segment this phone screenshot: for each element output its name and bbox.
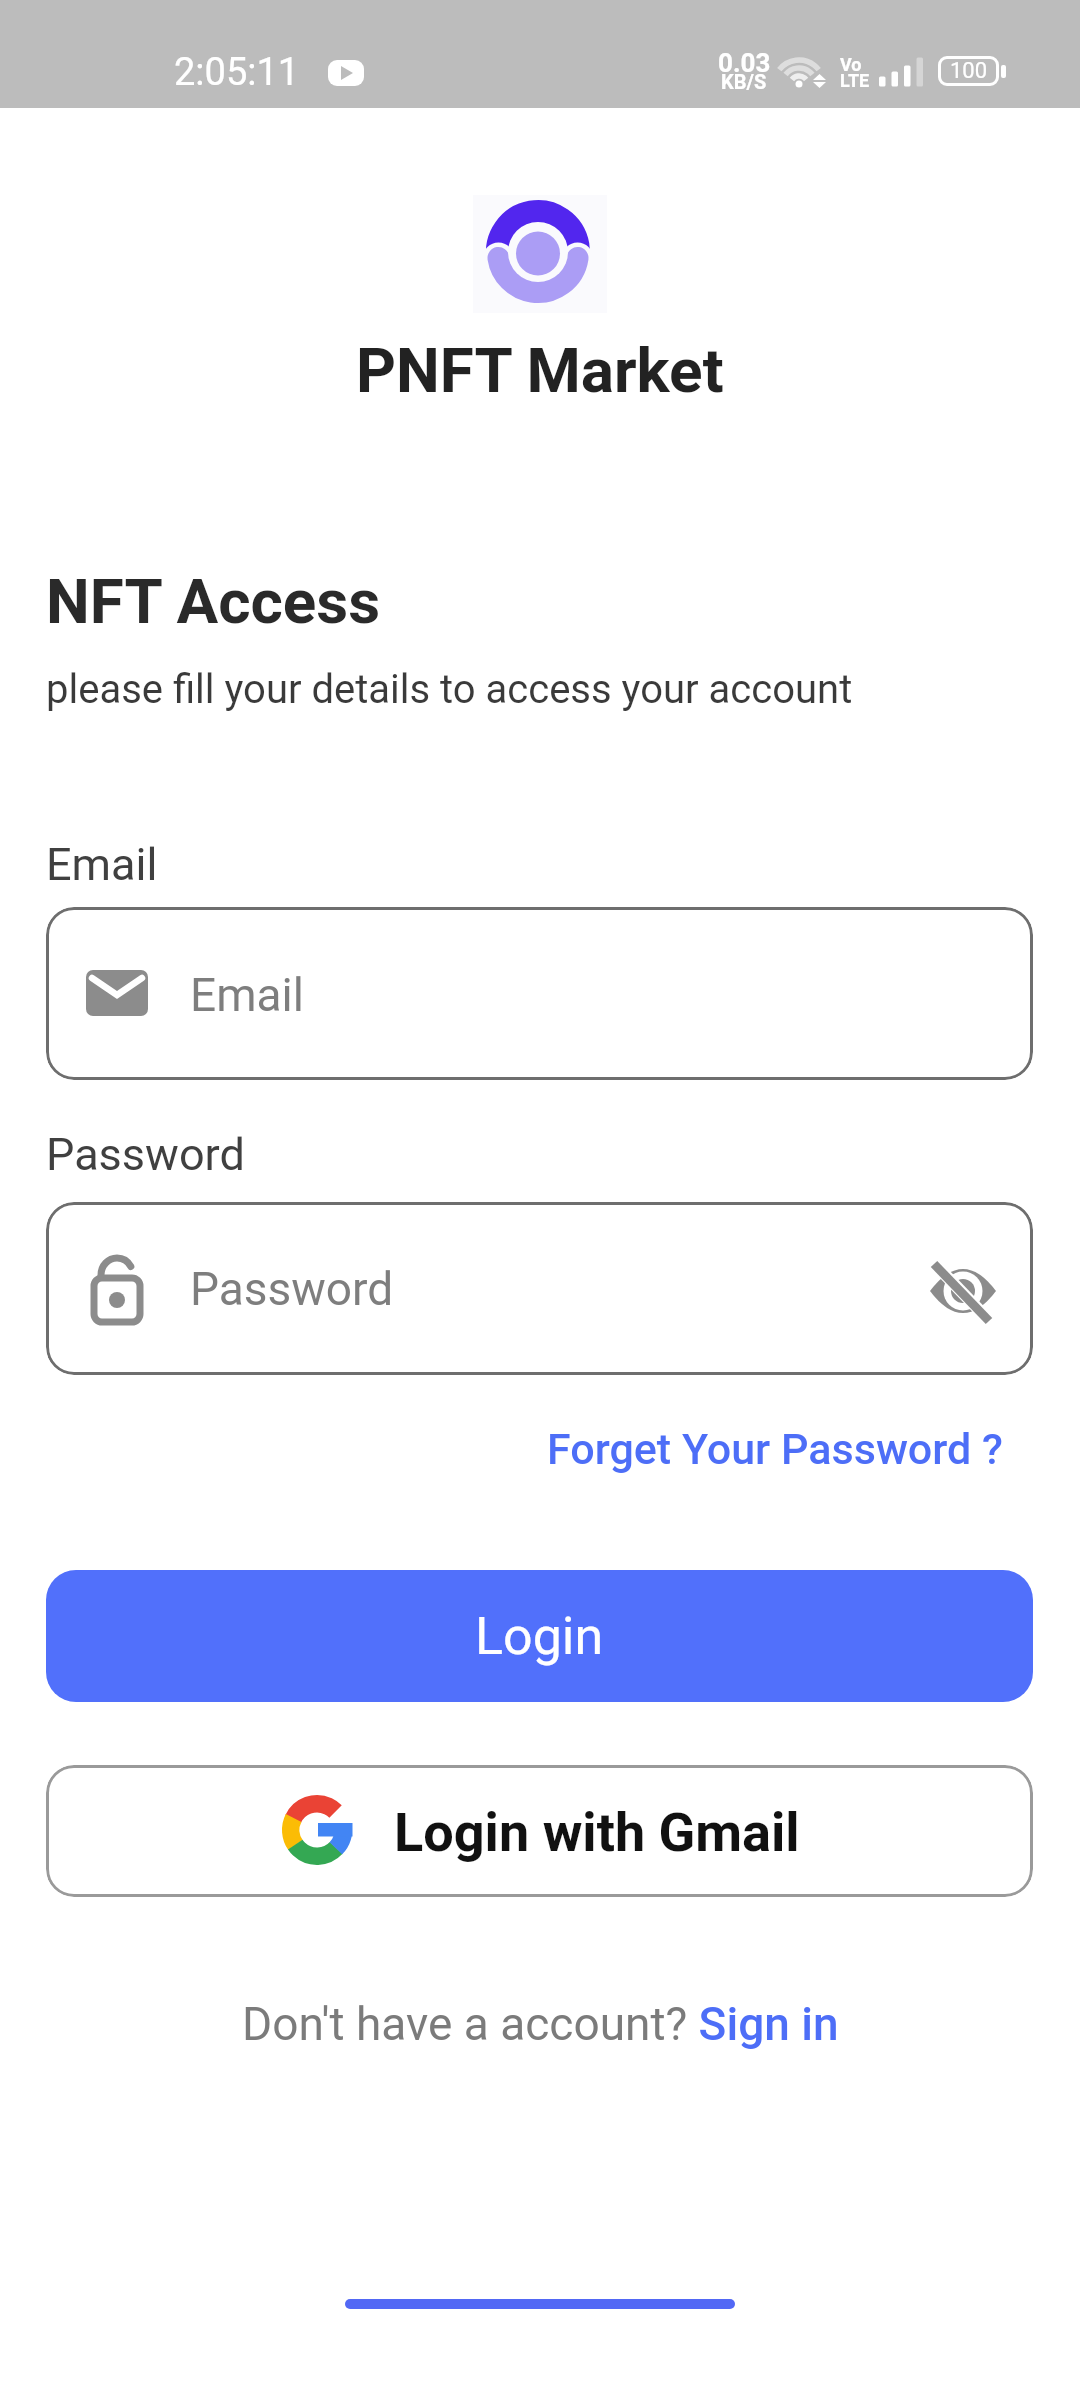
staticText: Email xyxy=(46,838,158,891)
staticText: NFT Access xyxy=(46,565,381,638)
button[interactable]: Don't have a account? Sign in xyxy=(242,1997,839,2051)
button[interactable]: Login xyxy=(46,1570,1033,1702)
button[interactable]: Forget Your Password ? xyxy=(547,1424,1003,1474)
staticText: Email xyxy=(190,968,304,1022)
staticText: 0.03 xyxy=(718,48,771,78)
button[interactable]: Login with Gmail xyxy=(46,1765,1033,1897)
staticText: PNFT Market xyxy=(356,334,724,407)
staticText: please fill your details to access your … xyxy=(46,666,853,713)
staticText: Password xyxy=(190,1262,394,1316)
staticText: 100 xyxy=(950,58,988,84)
staticText: Login with Gmail xyxy=(394,1801,800,1864)
button[interactable]: Password xyxy=(46,1202,1033,1375)
staticText: LTE xyxy=(840,70,870,91)
button[interactable]: Email xyxy=(46,907,1033,1080)
staticText: Password xyxy=(46,1128,245,1181)
staticText: Vo xyxy=(840,54,862,75)
staticText: Login xyxy=(475,1606,604,1667)
button[interactable] xyxy=(930,1260,996,1320)
staticText: KB/S xyxy=(721,70,767,93)
staticText: 2:05:11 xyxy=(174,50,300,95)
